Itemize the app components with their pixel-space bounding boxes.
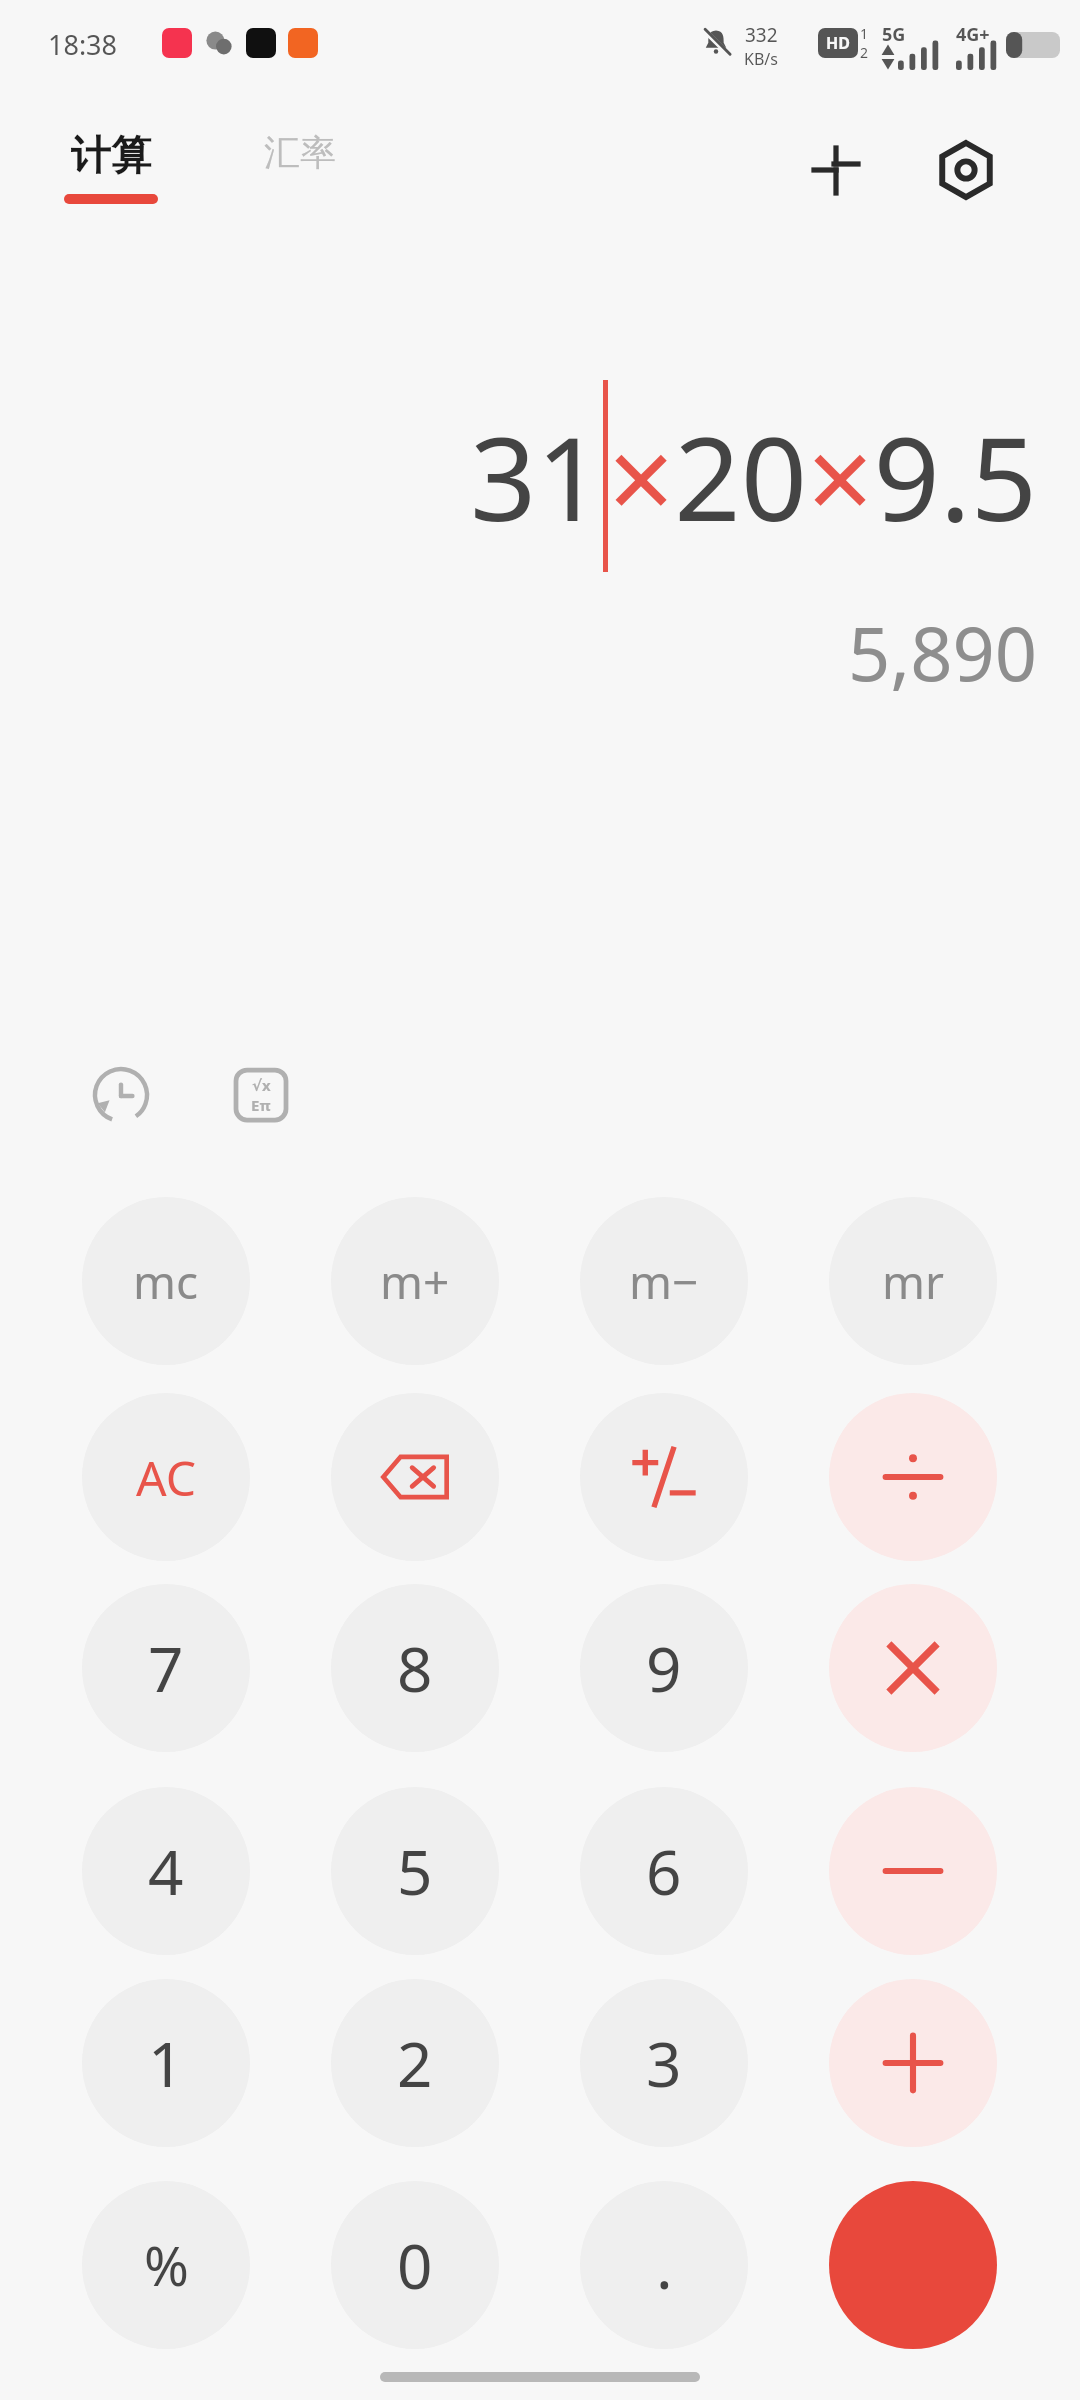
button[interactable]: 1	[82, 1979, 250, 2147]
button[interactable]: %	[82, 2181, 250, 2349]
staticText: 计算	[71, 130, 151, 180]
staticText: 6	[646, 1829, 682, 1913]
staticText: 汇率	[264, 130, 336, 175]
button[interactable]: 4	[82, 1787, 250, 1955]
button[interactable]: .	[580, 2181, 748, 2349]
staticText: 2	[397, 2021, 433, 2105]
staticText: AC	[136, 1445, 197, 1510]
button[interactable]: Divide	[829, 1393, 997, 1561]
staticText: HD	[826, 32, 850, 54]
button[interactable]: 8	[331, 1584, 499, 1752]
button[interactable]: Equals	[829, 2181, 997, 2349]
button[interactable]: m+	[331, 1197, 499, 1365]
button[interactable]: Plus minus	[580, 1393, 748, 1561]
button[interactable]: 5	[331, 1787, 499, 1955]
staticText: .	[656, 2223, 673, 2307]
button[interactable]: 9	[580, 1584, 748, 1752]
button[interactable]: Plus	[829, 1979, 997, 2147]
staticText: 31	[470, 397, 603, 555]
button[interactable]: 3	[580, 1979, 748, 2147]
button[interactable]: History	[78, 1052, 164, 1138]
staticText: 1	[148, 2021, 184, 2105]
staticText: %	[144, 2228, 189, 2302]
button[interactable]: Scientific mode	[218, 1052, 304, 1138]
staticText: 4	[148, 1829, 184, 1913]
button[interactable]: mc	[82, 1197, 250, 1365]
button[interactable]: m−	[580, 1197, 748, 1365]
staticText: 0	[397, 2223, 433, 2307]
staticText: 18:38	[48, 26, 118, 63]
button[interactable]: Collapse	[790, 124, 882, 216]
staticText: mr	[882, 1250, 945, 1313]
staticText: √x	[252, 1075, 271, 1095]
button[interactable]: 6	[580, 1787, 748, 1955]
button[interactable]: 汇率	[264, 130, 336, 175]
button[interactable]: Minus	[829, 1787, 997, 1955]
staticText: 1	[860, 24, 869, 43]
staticText: 9	[646, 1626, 682, 1710]
staticText: mc	[133, 1250, 199, 1313]
button[interactable]: Settings	[920, 124, 1012, 216]
staticText: 5,890	[848, 602, 1038, 703]
button[interactable]: 0	[331, 2181, 499, 2349]
staticText: m−	[629, 1250, 699, 1313]
staticText: 7	[148, 1626, 184, 1710]
staticText: 3	[646, 2021, 682, 2105]
staticText: 5	[397, 1829, 433, 1913]
staticText: 2	[860, 43, 869, 62]
button[interactable]: Multiply	[829, 1584, 997, 1752]
button[interactable]: 2	[331, 1979, 499, 2147]
staticText: m+	[380, 1250, 450, 1313]
button[interactable]: Backspace	[331, 1393, 499, 1561]
staticText: Eπ	[251, 1095, 271, 1115]
staticText: 332	[745, 22, 778, 48]
button[interactable]: 计算	[64, 130, 158, 204]
staticText: KB/s	[744, 48, 778, 70]
button[interactable]: AC	[82, 1393, 250, 1561]
staticText: ×20×9.5	[608, 397, 1038, 555]
staticText: 8	[397, 1626, 433, 1710]
staticText: 5G	[882, 22, 906, 47]
button[interactable]: mr	[829, 1197, 997, 1365]
staticText: 4G+	[956, 22, 990, 47]
button[interactable]: 7	[82, 1584, 250, 1752]
